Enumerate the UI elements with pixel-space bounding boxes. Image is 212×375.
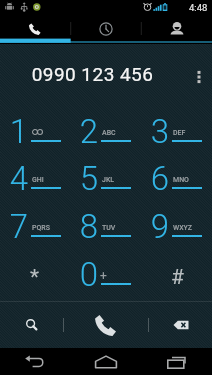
button[interactable]: # <box>141 253 212 301</box>
staticText: + <box>100 269 107 283</box>
button[interactable]: Call <box>64 302 148 348</box>
staticText: DEF <box>173 129 186 137</box>
staticText: 2 <box>79 112 99 151</box>
staticText: 9 <box>150 207 170 246</box>
button[interactable]: 8 <box>70 205 141 253</box>
staticText: 8 <box>79 207 99 246</box>
button[interactable]: Dialer <box>0 15 70 44</box>
staticText: * <box>30 265 40 290</box>
staticText: 0990 123 456 <box>0 63 185 85</box>
button[interactable]: 7 <box>0 205 70 253</box>
button[interactable]: 5 <box>70 157 141 205</box>
staticText: # <box>171 265 184 290</box>
button[interactable]: 1 <box>0 110 70 157</box>
button[interactable]: Back <box>0 348 70 375</box>
button[interactable]: Contacts <box>141 15 212 44</box>
staticText: 3 <box>150 112 170 151</box>
staticText: 0 <box>79 255 99 294</box>
staticText: 4:48 <box>189 2 208 13</box>
button[interactable]: Search <box>0 302 63 348</box>
staticText: JKL <box>102 176 115 184</box>
button[interactable]: 9 <box>141 205 212 253</box>
staticText: 6 <box>150 159 170 198</box>
button[interactable]: Recent apps <box>141 348 212 375</box>
button[interactable]: * <box>0 253 70 301</box>
button[interactable]: 0 <box>70 253 141 301</box>
staticText: GHI <box>32 176 44 184</box>
button[interactable]: Call log <box>70 15 141 44</box>
staticText: TUV <box>102 224 116 232</box>
staticText: 5 <box>79 159 99 198</box>
staticText: MNO <box>173 176 189 184</box>
button[interactable]: 2 <box>70 110 141 157</box>
staticText: WXYZ <box>173 224 193 232</box>
staticText: 1 <box>9 112 29 151</box>
staticText: 4 <box>9 159 29 198</box>
button[interactable]: More options <box>185 44 212 110</box>
button[interactable]: Delete <box>149 302 212 348</box>
button[interactable]: 6 <box>141 157 212 205</box>
button[interactable]: 3 <box>141 110 212 157</box>
staticText: 7 <box>9 207 29 246</box>
button[interactable]: 4 <box>0 157 70 205</box>
staticText: ABC <box>102 129 116 137</box>
staticText: PQRS <box>32 224 50 232</box>
button[interactable]: Home <box>70 348 141 375</box>
